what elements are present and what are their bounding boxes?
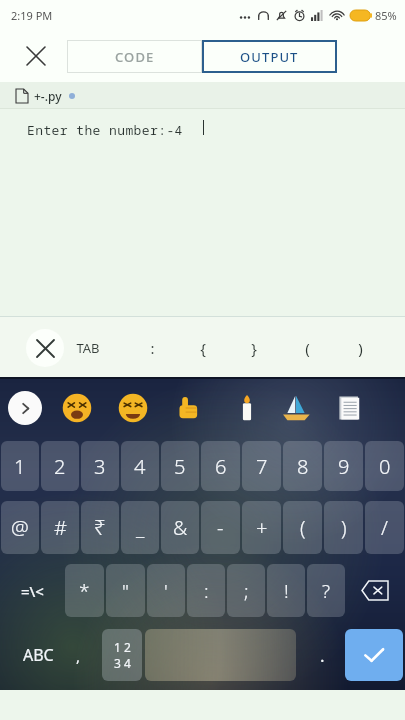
staticText: 5 bbox=[174, 453, 186, 480]
button[interactable]: Close bbox=[18, 38, 54, 74]
button[interactable]: ! bbox=[267, 564, 305, 617]
staticText: ABC bbox=[23, 644, 54, 666]
button[interactable]: & bbox=[161, 501, 199, 554]
button[interactable]: =\< bbox=[1, 564, 64, 617]
button[interactable]: Enter bbox=[345, 629, 403, 681]
button[interactable]: . bbox=[299, 629, 345, 681]
button[interactable]: +-.py bbox=[0, 82, 405, 109]
staticText: Enter the number:-4 bbox=[27, 121, 183, 139]
button[interactable]: 3 bbox=[81, 441, 119, 491]
button[interactable]: : bbox=[187, 564, 225, 617]
staticText: 9 bbox=[338, 453, 350, 480]
button[interactable]: ? bbox=[307, 564, 345, 617]
button[interactable]: Candle bbox=[230, 391, 264, 425]
staticText: 0 bbox=[379, 453, 391, 480]
staticText: # bbox=[54, 514, 67, 541]
button[interactable]: ) bbox=[324, 501, 363, 554]
staticText: 7 bbox=[256, 453, 268, 480]
button[interactable]: 2 bbox=[41, 441, 79, 491]
staticText: ( bbox=[305, 338, 310, 358]
button[interactable]: } bbox=[230, 324, 278, 372]
staticText: 1 2 bbox=[114, 639, 131, 655]
button[interactable]: 4 bbox=[121, 441, 159, 491]
staticText: ; bbox=[244, 578, 249, 604]
staticText: 4 bbox=[134, 453, 146, 480]
staticText: TAB bbox=[76, 339, 100, 357]
staticText: 3 bbox=[94, 453, 106, 480]
button[interactable]: Backspace bbox=[346, 564, 404, 617]
staticText: 2 bbox=[54, 453, 66, 480]
button[interactable]: ₹ bbox=[81, 501, 119, 554]
button[interactable]: TAB bbox=[64, 324, 112, 372]
staticText: ! bbox=[284, 578, 289, 604]
staticText: : bbox=[204, 578, 209, 604]
button[interactable]: 1 2 bbox=[102, 629, 142, 681]
button[interactable]: # bbox=[41, 501, 79, 554]
staticText: @ bbox=[11, 514, 29, 541]
button[interactable]: Hide toolbar bbox=[26, 329, 64, 367]
staticText: ₹ bbox=[94, 514, 106, 541]
staticText: - bbox=[217, 514, 224, 541]
staticText: } bbox=[251, 338, 257, 358]
button[interactable]: + bbox=[242, 501, 281, 554]
button[interactable]: ABC bbox=[2, 629, 102, 681]
staticText: ? bbox=[322, 578, 331, 604]
staticText: : bbox=[150, 338, 155, 358]
button[interactable]: 5 bbox=[161, 441, 199, 491]
staticText: =\< bbox=[21, 581, 44, 601]
button[interactable]: Emoji bbox=[60, 391, 94, 425]
button[interactable]: _ bbox=[121, 501, 159, 554]
staticText: " bbox=[122, 578, 129, 604]
button[interactable]: CODE bbox=[67, 40, 202, 73]
staticText: & bbox=[173, 514, 188, 541]
staticText: 3 4 bbox=[114, 655, 131, 671]
button[interactable]: ( bbox=[283, 324, 331, 372]
button[interactable]: 7 bbox=[242, 441, 281, 491]
button[interactable]: / bbox=[365, 501, 404, 554]
staticText: ) bbox=[358, 338, 363, 358]
button[interactable]: Document bbox=[333, 392, 365, 424]
staticText: 8 bbox=[297, 453, 309, 480]
button[interactable]: ( bbox=[283, 501, 322, 554]
button[interactable]: * bbox=[65, 564, 104, 617]
staticText: / bbox=[381, 514, 388, 541]
button[interactable]: 0 bbox=[365, 441, 404, 491]
staticText: ( bbox=[300, 514, 306, 541]
staticText: 6 bbox=[215, 453, 227, 480]
button[interactable]: 9 bbox=[324, 441, 363, 491]
staticText: { bbox=[200, 338, 206, 358]
button[interactable]: : bbox=[128, 324, 176, 372]
button[interactable]: Thumbs up bbox=[172, 391, 206, 425]
staticText: _ bbox=[136, 514, 145, 541]
staticText: . bbox=[320, 644, 325, 667]
staticText: +-.py bbox=[34, 88, 62, 104]
button[interactable]: ) bbox=[336, 324, 384, 372]
staticText: CODE bbox=[115, 48, 155, 66]
button[interactable]: { bbox=[179, 324, 227, 372]
button[interactable]: - bbox=[201, 501, 240, 554]
button[interactable]: Space bbox=[145, 629, 296, 681]
button[interactable]: 6 bbox=[201, 441, 240, 491]
staticText: + bbox=[256, 514, 268, 541]
button[interactable]: 1 bbox=[1, 441, 39, 491]
staticText: 2:19 PM bbox=[11, 8, 53, 23]
button[interactable]: " bbox=[106, 564, 145, 617]
button[interactable]: 8 bbox=[283, 441, 322, 491]
staticText: ) bbox=[341, 514, 347, 541]
button[interactable]: Sailboat bbox=[278, 390, 314, 426]
staticText: OUTPUT bbox=[240, 48, 299, 66]
staticText: 85% bbox=[375, 8, 397, 23]
button[interactable]: OUTPUT bbox=[202, 40, 337, 73]
button[interactable]: ; bbox=[227, 564, 265, 617]
button[interactable]: Emoji bbox=[116, 391, 150, 425]
staticText: ' bbox=[164, 578, 168, 604]
button[interactable]: @ bbox=[1, 501, 39, 554]
staticText: 1 bbox=[14, 453, 26, 480]
button[interactable]: ' bbox=[147, 564, 185, 617]
button[interactable]: More emoji bbox=[8, 391, 42, 425]
staticText: , bbox=[76, 646, 81, 666]
staticText: * bbox=[79, 578, 90, 604]
